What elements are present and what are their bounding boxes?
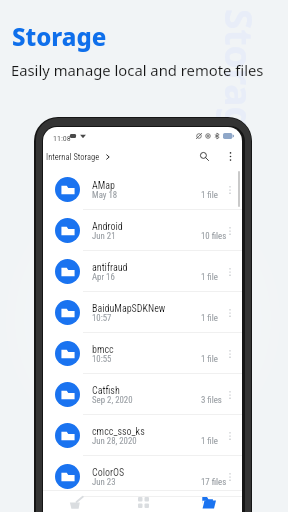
button[interactable]: antifraud [43, 251, 242, 292]
staticText: Catfish [92, 385, 120, 397]
button[interactable]: AMap [43, 169, 242, 210]
staticText: 10:57 [92, 313, 112, 323]
button[interactable]: Item menu [220, 415, 240, 456]
button[interactable]: Item menu [220, 210, 240, 251]
staticText: 10:55 [92, 354, 112, 364]
button[interactable]: cmcc_sso_ks [43, 415, 242, 456]
button[interactable]: Item menu [220, 456, 240, 497]
button[interactable]: Android [43, 210, 242, 251]
staticText: antifraud [92, 262, 128, 274]
staticText: Sep 2, 2020 [92, 395, 133, 405]
staticText: Android [92, 221, 123, 233]
staticText: 1 file [201, 313, 218, 323]
button[interactable]: Item menu [220, 292, 240, 333]
staticText: Storage [215, 9, 265, 153]
button[interactable]: Clean [43, 492, 110, 512]
staticText: 3 files [201, 395, 222, 405]
staticText: 1 file [201, 272, 218, 282]
staticText: Storage [12, 20, 107, 53]
staticText: 1 file [201, 436, 218, 446]
staticText: May 18 [92, 190, 118, 200]
button[interactable]: Search [195, 147, 213, 165]
staticText: BaiduMapSDKNew [92, 303, 166, 315]
staticText: 1 file [201, 190, 218, 200]
staticText: Internal Storage [46, 152, 100, 162]
staticText: Apr 16 [92, 272, 115, 282]
staticText: 10 files [201, 231, 227, 241]
button[interactable]: Catfish [43, 374, 242, 415]
button[interactable]: Item menu [220, 251, 240, 292]
button[interactable]: Item menu [220, 169, 240, 210]
staticText: Jun 23 [92, 477, 116, 487]
staticText: Easily manage local and remote files [11, 60, 264, 80]
button[interactable]: BaiduMapSDKNew [43, 292, 242, 333]
button[interactable]: Apps [110, 492, 176, 512]
button[interactable]: Item menu [220, 374, 240, 415]
staticText: cmcc_sso_ks [92, 426, 145, 438]
staticText: ColorOS [92, 467, 125, 479]
button[interactable]: ColorOS [43, 456, 242, 497]
staticText: AMap [92, 180, 116, 192]
staticText: 11:08 [53, 134, 71, 143]
button[interactable]: bmcc [43, 333, 242, 374]
button[interactable]: Item menu [220, 333, 240, 374]
staticText: Jun 21 [92, 231, 116, 241]
staticText: Jun 28, 2020 [92, 436, 137, 446]
button[interactable]: More options [222, 148, 238, 164]
staticText: bmcc [92, 344, 114, 356]
button[interactable]: Files [176, 492, 242, 512]
staticText: 17 files [201, 477, 227, 487]
staticText: 1 file [201, 354, 218, 364]
button[interactable]: Internal Storage [43, 148, 114, 166]
